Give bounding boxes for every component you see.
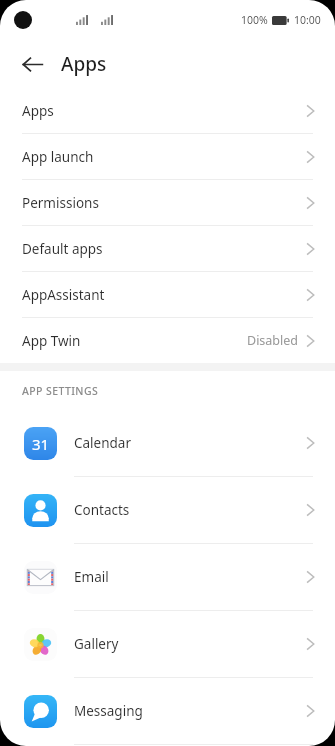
staticText: Messaging — [74, 702, 143, 720]
button[interactable]: 31 — [0, 410, 335, 476]
staticText: Apps — [61, 51, 107, 77]
staticText: Contacts — [74, 501, 130, 519]
button[interactable]: AppAssistant — [0, 272, 335, 317]
staticText: Permissions — [22, 194, 99, 212]
button[interactable]: Email — [0, 544, 335, 610]
staticText: Gallery — [74, 635, 119, 653]
button[interactable]: Default apps — [0, 226, 335, 271]
staticText: AppAssistant — [22, 286, 105, 304]
button[interactable]: Contacts — [0, 477, 335, 543]
button[interactable]: App Twin — [0, 318, 335, 363]
staticText: APP SETTINGS — [22, 384, 99, 398]
staticText: 31 — [32, 434, 50, 454]
staticText: Calendar — [74, 434, 131, 452]
staticText: App Twin — [22, 332, 81, 350]
button[interactable]: Messaging — [0, 678, 335, 744]
button[interactable]: Permissions — [0, 180, 335, 225]
staticText: Default apps — [22, 240, 103, 258]
button[interactable]: App launch — [0, 134, 335, 179]
button[interactable]: Gallery — [0, 611, 335, 677]
button[interactable]: Apps — [0, 88, 335, 133]
staticText: Email — [74, 568, 109, 586]
staticText: 100% — [241, 13, 268, 27]
staticText: Apps — [22, 102, 54, 120]
staticText: 10:00 — [294, 13, 321, 27]
button[interactable]: Back — [14, 46, 50, 82]
staticText: Disabled — [247, 332, 299, 349]
staticText: App launch — [22, 148, 94, 166]
